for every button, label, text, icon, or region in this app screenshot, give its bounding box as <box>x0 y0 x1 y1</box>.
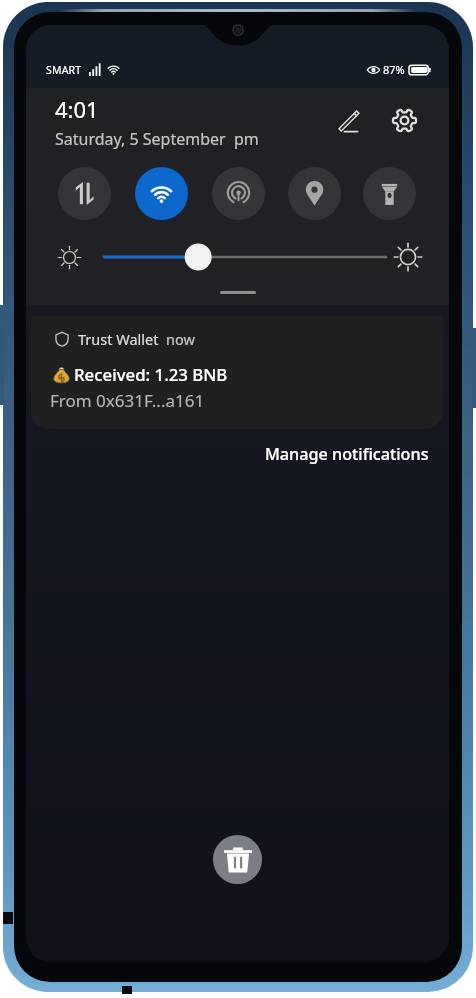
staticText: 87% <box>383 62 405 77</box>
staticText: 4:01 <box>55 94 99 124</box>
button[interactable]: Manage notifications <box>261 438 433 470</box>
button[interactable]: Brightness <box>104 242 386 272</box>
staticText: From 0x631F...a161 <box>50 389 205 412</box>
button[interactable]: Mobile data <box>58 167 111 220</box>
staticText: Trust Wallet <box>78 329 159 349</box>
button[interactable]: Trust Wallet <box>31 316 443 429</box>
staticText: now <box>166 329 195 349</box>
staticText: SMART <box>46 63 82 77</box>
button[interactable]: Flashlight <box>363 167 416 220</box>
button[interactable]: Wi-Fi <box>135 167 188 220</box>
button[interactable]: Edit quick settings <box>329 99 371 141</box>
staticText: Saturday, 5 September pm <box>55 128 259 150</box>
button[interactable]: Clear all notifications <box>213 835 262 884</box>
staticText: Received: 1.23 BNB <box>74 363 228 386</box>
button[interactable]: Hotspot <box>212 167 265 220</box>
button[interactable]: Location <box>288 167 341 220</box>
staticText: Manage notifications <box>265 443 429 465</box>
button[interactable]: Settings <box>383 99 425 141</box>
